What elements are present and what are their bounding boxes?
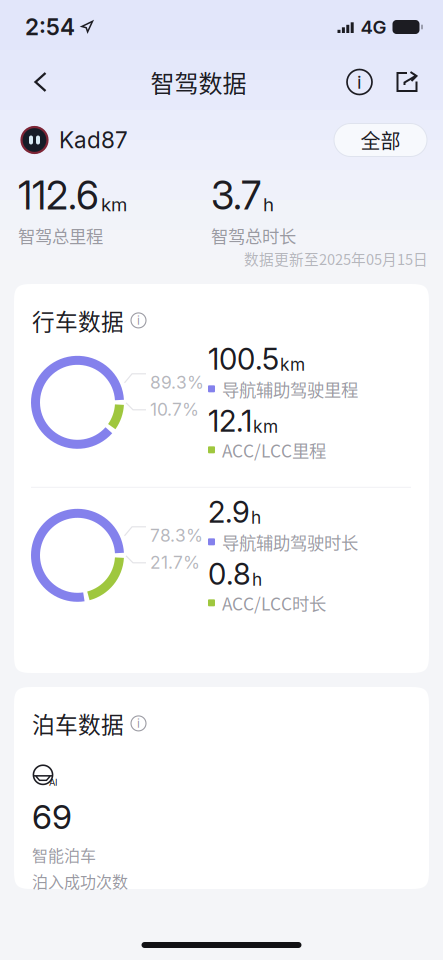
staticText: h — [263, 193, 274, 216]
staticText: 12.1 — [208, 403, 252, 439]
staticText: 112.6 — [18, 172, 99, 219]
staticText: 89.3% — [150, 372, 204, 393]
staticText: i — [137, 716, 140, 731]
staticText: 69 — [32, 797, 72, 837]
staticText: Kad87 — [59, 126, 128, 154]
staticText: h — [252, 569, 262, 590]
staticText: i — [137, 313, 140, 328]
staticText: km — [253, 416, 278, 437]
staticText: 智驾数据 — [150, 65, 246, 99]
staticText: 智能泊车 — [32, 843, 96, 866]
staticText: i — [357, 71, 362, 93]
staticText: ACC/LCC里程 — [222, 437, 326, 462]
staticText: 78.3% — [150, 525, 203, 546]
staticText: 智驾总时长 — [211, 223, 296, 248]
staticText: h — [251, 507, 261, 528]
staticText: 21.7% — [150, 552, 200, 573]
staticText: 全部 — [360, 125, 400, 154]
staticText: 导航辅助驾驶里程 — [222, 376, 358, 401]
button[interactable]: Info — [340, 62, 379, 101]
staticText: 3.7 — [211, 172, 261, 219]
staticText: 行车数据 — [32, 304, 124, 337]
staticText: 0.8 — [208, 556, 251, 592]
staticText: 2:54 — [25, 13, 75, 41]
staticText: 10.7% — [150, 399, 199, 420]
staticText: km — [101, 193, 127, 216]
staticText: ACC/LCC时长 — [222, 590, 326, 615]
staticText: 4G — [360, 16, 386, 38]
staticText: 智驾总里程 — [18, 223, 103, 248]
staticText: AI — [49, 777, 58, 788]
staticText: 100.5 — [208, 341, 279, 377]
staticText: 泊车数据 — [32, 707, 124, 740]
button[interactable]: 全部 — [334, 123, 427, 156]
staticText: 数据更新至2025年05月15日 — [244, 248, 428, 269]
staticText: 2.9 — [208, 494, 250, 530]
button[interactable]: Back — [24, 62, 57, 102]
staticText: km — [280, 354, 305, 375]
button[interactable]: Share — [389, 64, 425, 99]
staticText: 导航辅助驾驶时长 — [222, 529, 358, 554]
staticText: 泊入成功次数 — [32, 869, 128, 892]
